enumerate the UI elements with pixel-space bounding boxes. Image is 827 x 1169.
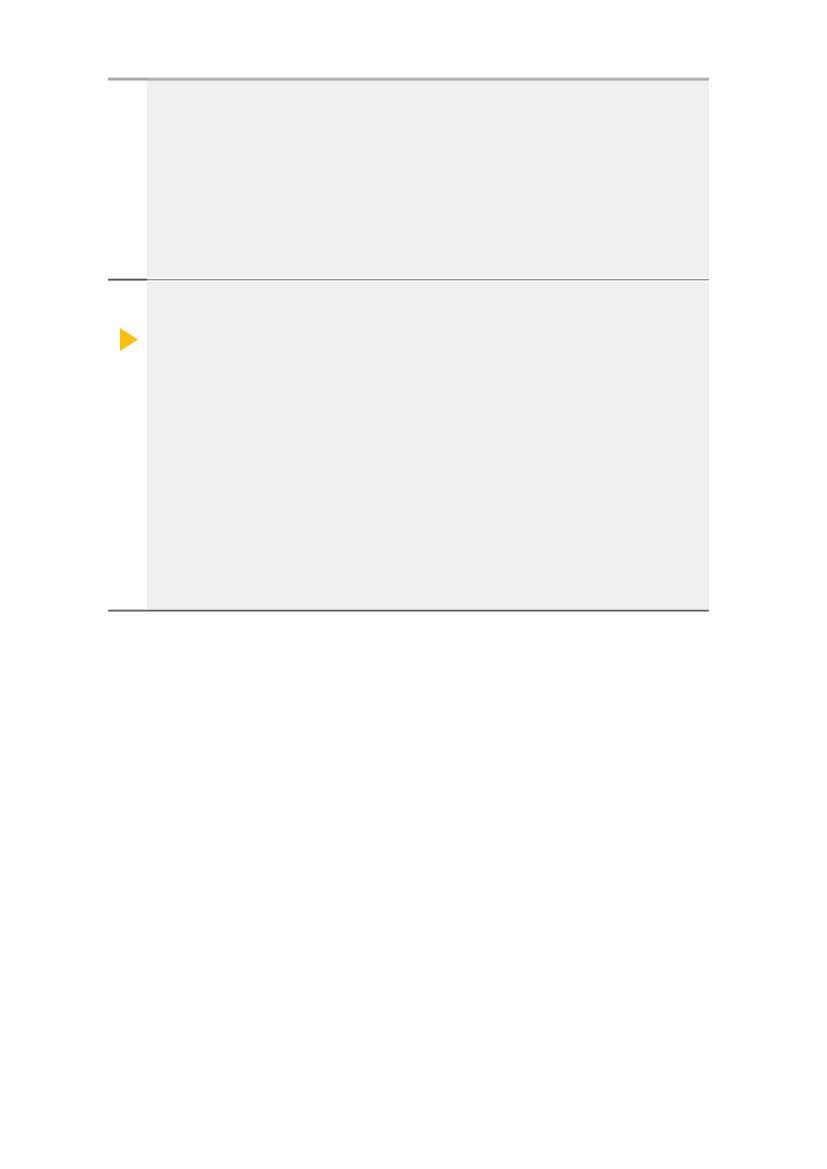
button[interactable]: Collapse section (120, 328, 138, 351)
button[interactable] (108, 78, 709, 279)
button[interactable]: Collapse section (108, 279, 709, 610)
